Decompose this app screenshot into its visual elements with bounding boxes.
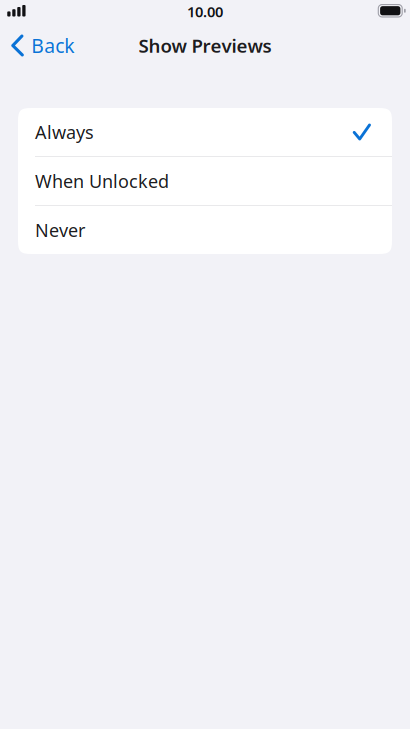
staticText: 10.00 xyxy=(187,1,223,21)
button[interactable]: Never xyxy=(18,206,392,254)
staticText: Always xyxy=(35,120,94,144)
staticText: Back xyxy=(31,32,74,59)
staticText: Never xyxy=(35,218,85,242)
button[interactable]: Back xyxy=(0,24,84,66)
button[interactable]: When Unlocked xyxy=(18,157,392,205)
staticText: Show Previews xyxy=(138,33,271,58)
button[interactable]: Always xyxy=(18,108,392,156)
staticText: When Unlocked xyxy=(35,169,169,193)
